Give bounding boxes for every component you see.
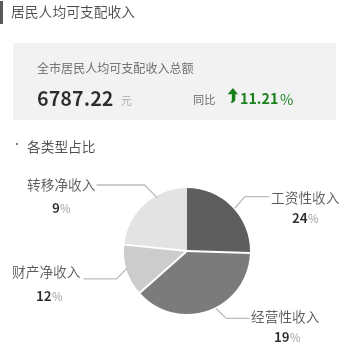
staticText: 元: [121, 92, 132, 108]
staticText: 19: [274, 327, 290, 346]
button[interactable]: 居民人均可支配收入: [0, 0, 136, 24]
staticText: %: [308, 210, 319, 227]
button[interactable]: 经营性收入: [251, 306, 320, 326]
staticText: %: [60, 200, 71, 217]
staticText: 全市居民人均可支配收入总额: [37, 59, 194, 76]
staticText: 6787.22: [37, 83, 114, 112]
button[interactable]: 工资性收入: [271, 187, 340, 207]
staticText: %: [52, 288, 63, 305]
staticText: 各类型占比: [27, 136, 96, 156]
staticText: 同比: [193, 91, 216, 107]
button[interactable]: 转移净收入: [27, 174, 96, 194]
staticText: 11.21: [240, 87, 279, 108]
staticText: %: [290, 329, 301, 346]
staticText: %: [280, 88, 294, 109]
staticText: 24: [292, 208, 308, 227]
other: Increase: [227, 88, 238, 103]
button[interactable]: 全市居民人均可支配收入总额: [13, 43, 336, 120]
staticText: 12: [36, 286, 52, 305]
button[interactable]: 财产净收入: [12, 261, 81, 281]
staticText: 居民人均可支配收入: [11, 1, 136, 21]
staticText: 9: [52, 198, 60, 217]
